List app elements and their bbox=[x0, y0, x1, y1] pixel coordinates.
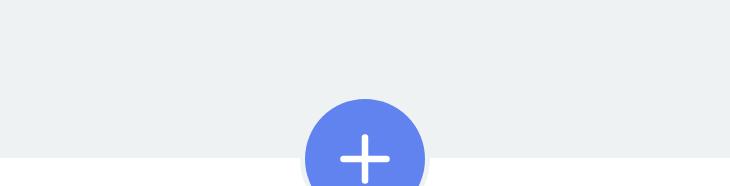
button[interactable]: Add bbox=[305, 99, 425, 186]
